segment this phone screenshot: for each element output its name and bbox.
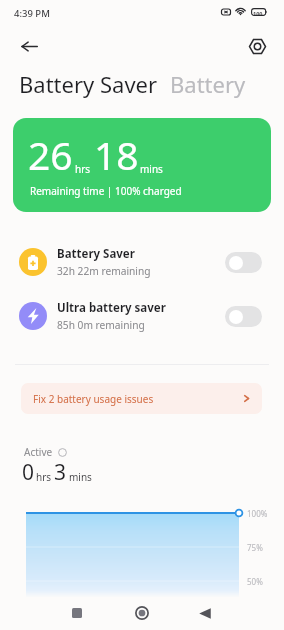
staticText: 100% bbox=[247, 508, 268, 519]
button[interactable]: Settings bbox=[242, 31, 272, 61]
staticText: 32h 22m remaining bbox=[57, 264, 151, 278]
button[interactable]: Back bbox=[190, 598, 220, 628]
staticText: Battery Saver bbox=[57, 246, 135, 262]
button[interactable]: Back bbox=[14, 31, 44, 61]
staticText: 75% bbox=[247, 542, 263, 553]
staticText: 0 bbox=[22, 458, 35, 487]
staticText: 4:39 PM bbox=[14, 7, 50, 20]
staticText: mins bbox=[69, 470, 92, 484]
staticText: 50% bbox=[247, 576, 263, 587]
staticText: 26 bbox=[28, 128, 73, 181]
button[interactable]: Ultra battery saver bbox=[0, 290, 284, 342]
staticText: 100 bbox=[253, 10, 263, 17]
button[interactable]: 26 bbox=[13, 118, 271, 212]
button[interactable]: Home bbox=[127, 598, 157, 628]
staticText: Active bbox=[24, 445, 53, 459]
staticText: Battery Saver bbox=[19, 69, 158, 99]
button[interactable]: Battery Saver bbox=[0, 236, 284, 288]
staticText: Ultra battery saver bbox=[57, 300, 166, 316]
staticText: 3 bbox=[54, 458, 67, 487]
button[interactable]: Recents bbox=[62, 598, 92, 628]
staticText: Remaining time | 100% charged bbox=[30, 184, 182, 198]
button[interactable]: Fix 2 battery usage issues bbox=[21, 383, 262, 414]
staticText: mins bbox=[140, 162, 163, 176]
staticText: 18 bbox=[94, 128, 139, 181]
staticText: Battery bbox=[170, 69, 246, 99]
staticText: hrs bbox=[75, 162, 91, 176]
staticText: hrs bbox=[36, 470, 52, 484]
staticText: 85h 0m remaining bbox=[57, 318, 145, 332]
staticText: Fix 2 battery usage issues bbox=[33, 392, 154, 406]
